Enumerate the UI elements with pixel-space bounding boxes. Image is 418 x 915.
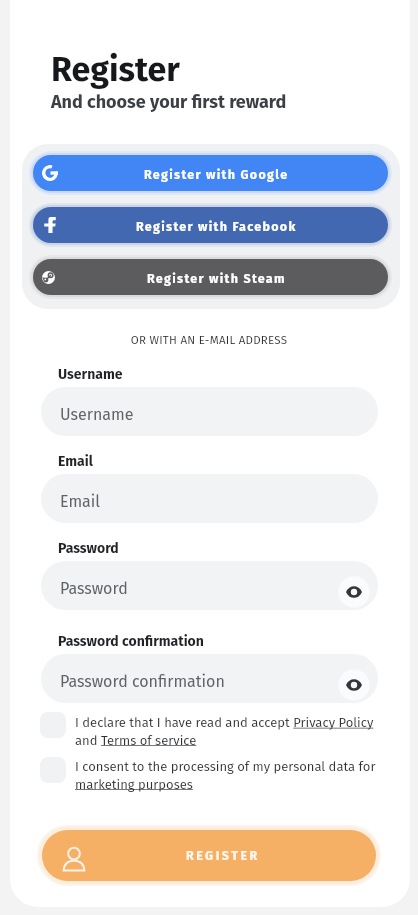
staticText: Register (51, 49, 180, 90)
staticText: And choose your first reward (51, 91, 287, 113)
staticText: OR WITH AN E-MAIL ADDRESS (0, 333, 418, 347)
button[interactable]: Checkbox (40, 712, 66, 738)
staticText: REGISTER (186, 848, 260, 863)
staticText: Password (58, 540, 119, 557)
button[interactable]: Password confirmation (41, 654, 378, 703)
button[interactable]: Password (41, 561, 378, 610)
staticText: I declare that I have read and accept Pr… (75, 715, 374, 748)
button[interactable]: Register with Facebook (33, 207, 388, 243)
staticText: Register with Steam (147, 271, 286, 286)
other: Show password (338, 669, 370, 701)
button[interactable]: REGISTER (42, 830, 376, 881)
staticText: Email (58, 453, 93, 470)
staticText: Password (60, 579, 128, 598)
staticText: Username (58, 366, 123, 383)
staticText: Password confirmation (58, 633, 204, 650)
other: Account (62, 847, 86, 871)
other: Show password (338, 576, 370, 608)
button[interactable]: Register with Google (33, 155, 388, 191)
button[interactable]: Register with Steam (33, 259, 388, 295)
button[interactable]: Checkbox (40, 757, 66, 783)
button[interactable]: Username (41, 387, 378, 436)
staticText: Email (60, 492, 101, 511)
button[interactable]: Email (41, 474, 378, 523)
staticText: Register with Google (144, 167, 289, 182)
staticText: Password confirmation (60, 672, 225, 691)
staticText: I consent to the processing of my person… (75, 759, 376, 792)
staticText: Username (60, 405, 134, 424)
staticText: Register with Facebook (136, 219, 297, 234)
